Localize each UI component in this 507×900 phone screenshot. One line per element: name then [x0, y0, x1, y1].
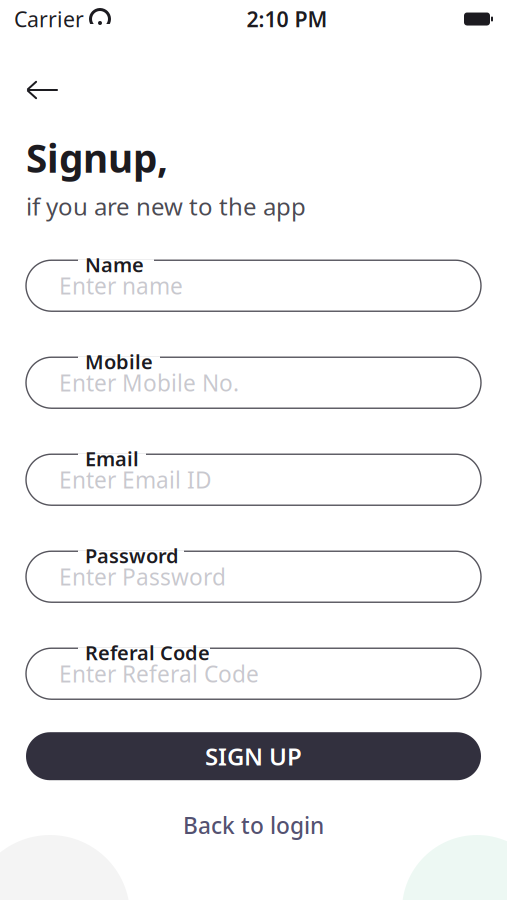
staticText: Enter name — [59, 271, 183, 301]
staticText: Enter Referal Code — [59, 659, 259, 689]
staticText: Carrier — [14, 5, 84, 33]
staticText: 2:10 PM — [246, 5, 327, 33]
staticText: Referal Code — [85, 639, 210, 666]
staticText: SIGN UP — [205, 740, 302, 772]
staticText: Enter Email ID — [59, 465, 212, 495]
staticText: Back to login — [183, 810, 324, 840]
staticText: if you are new to the app — [26, 190, 306, 222]
staticText: Password — [85, 542, 179, 569]
staticText: Mobile — [85, 348, 153, 375]
staticText: Name — [85, 251, 144, 278]
staticText: Enter Password — [59, 562, 226, 592]
button[interactable]: Back — [20, 70, 66, 110]
staticText: Email — [85, 445, 139, 472]
staticText: Signup, — [26, 132, 168, 183]
staticText: Enter Mobile No. — [59, 368, 239, 398]
button[interactable]: Back to login — [26, 802, 481, 848]
button[interactable]: SIGN UP — [26, 732, 481, 780]
